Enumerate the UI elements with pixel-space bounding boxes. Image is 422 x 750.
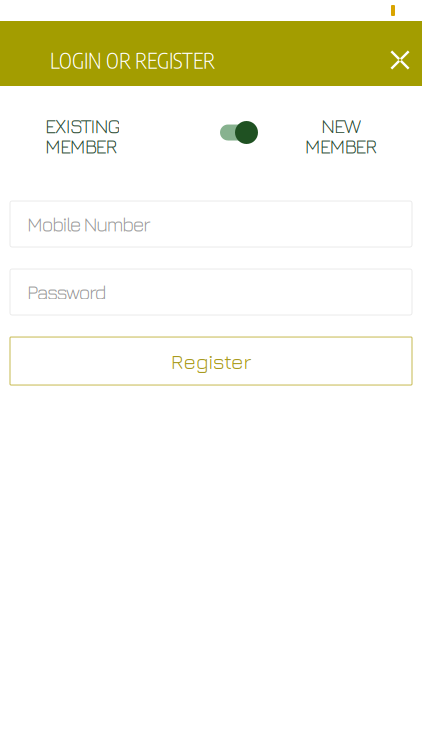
button[interactable]: Switch between existing and new member [220,86,258,144]
button[interactable]: EXISTING [0,86,220,158]
button[interactable]: Register [10,337,412,385]
button[interactable]: Close [380,40,420,80]
staticText: MEMBER [305,134,377,158]
staticText: LOGIN OR REGISTER [50,47,215,73]
staticText: Mobile Number [27,212,151,236]
staticText: EXISTING [45,114,120,138]
staticText: Register [171,348,251,374]
staticText: MEMBER [45,134,117,158]
staticText: NEW [321,114,361,138]
staticText: Password [27,280,106,304]
button[interactable]: NEW [260,86,422,158]
